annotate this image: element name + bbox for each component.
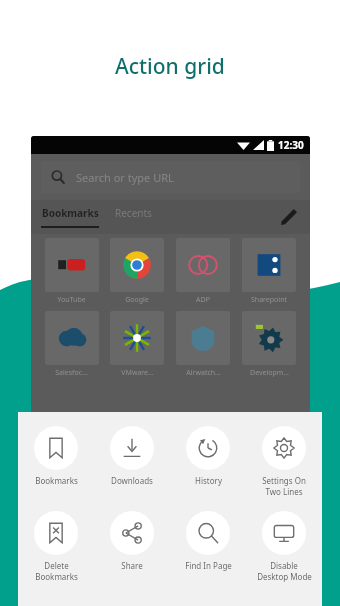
staticText: VMware...: [121, 368, 154, 378]
staticText: History: [195, 475, 222, 486]
button[interactable]: Salesfoc...: [39, 311, 104, 378]
staticText: Desktop Mode: [257, 571, 312, 582]
staticText: Two Lines: [265, 486, 303, 497]
staticText: Downloads: [111, 475, 153, 486]
staticText: ADP: [196, 295, 210, 305]
staticText: Share: [121, 560, 143, 571]
staticText: Delete: [44, 560, 69, 571]
button[interactable]: Recents: [115, 206, 152, 220]
staticText: Developm...: [250, 368, 289, 378]
button[interactable]: Settings On Two Lines: [246, 426, 322, 497]
staticText: YouTube: [57, 295, 86, 305]
button[interactable]: Delete Bookmarks: [18, 511, 94, 582]
button[interactable]: YouTube: [39, 238, 104, 305]
staticText: Bookmarks: [35, 475, 78, 486]
button[interactable]: Airwatch...: [170, 311, 236, 378]
button[interactable]: Downloads: [94, 426, 170, 486]
button[interactable]: Bookmarks: [18, 426, 94, 486]
button[interactable]: Search or type URL: [41, 161, 300, 193]
button[interactable]: Google: [104, 238, 170, 305]
staticText: Search or type URL: [76, 170, 174, 185]
button[interactable]: Developm...: [236, 311, 302, 378]
staticText: Sharepoint: [251, 295, 287, 305]
staticText: Disable: [270, 560, 298, 571]
button[interactable]: Disable Desktop Mode: [246, 511, 322, 582]
staticText: Settings On: [262, 475, 306, 486]
staticText: Bookmarks: [42, 206, 99, 220]
staticText: Salesfoc...: [55, 368, 88, 378]
button[interactable]: Share: [94, 511, 170, 571]
staticText: Airwatch...: [186, 368, 221, 378]
button[interactable]: ADP: [170, 238, 236, 305]
button[interactable]: VMware...: [104, 311, 170, 378]
button[interactable]: Sharepoint: [236, 238, 302, 305]
button[interactable]: History: [170, 426, 246, 486]
button[interactable]: Find In Page: [170, 511, 246, 571]
staticText: 12:30: [278, 138, 304, 152]
staticText: Find In Page: [185, 560, 232, 571]
staticText: Google: [125, 295, 149, 305]
button[interactable]: Bookmarks: [41, 206, 99, 228]
staticText: Bookmarks: [35, 571, 78, 582]
button[interactable]: Edit: [278, 206, 300, 228]
staticText: Action grid: [115, 52, 225, 81]
